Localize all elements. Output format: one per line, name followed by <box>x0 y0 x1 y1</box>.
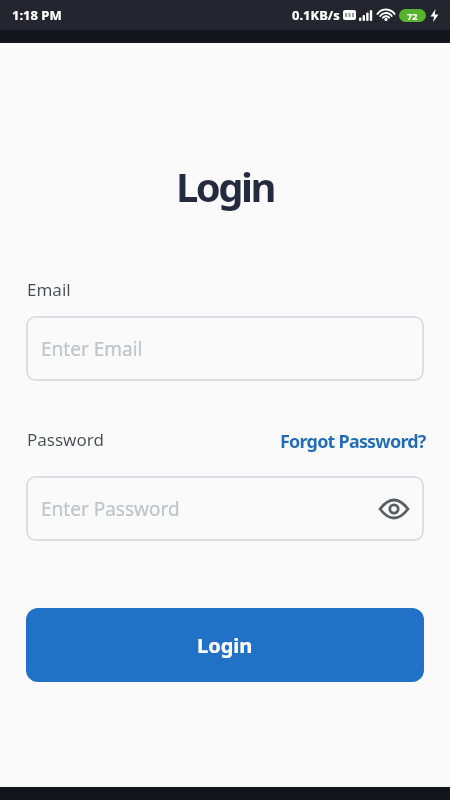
button[interactable] <box>378 493 410 525</box>
button[interactable]: Login <box>26 608 424 682</box>
button[interactable]: Forgot Password? <box>280 429 426 454</box>
staticText: 0.1KB/s <box>292 6 340 24</box>
button[interactable]: Enter Email <box>26 316 424 381</box>
button[interactable]: Enter Password <box>26 476 424 541</box>
staticText: Email <box>27 278 71 301</box>
staticText: Login <box>197 632 253 659</box>
staticText: Login <box>0 159 450 213</box>
staticText: 72 <box>407 10 418 22</box>
staticText: Enter Password <box>41 496 180 522</box>
staticText: Enter Email <box>41 336 143 362</box>
staticText: Password <box>27 428 104 451</box>
staticText: 1:18 PM <box>12 6 62 24</box>
